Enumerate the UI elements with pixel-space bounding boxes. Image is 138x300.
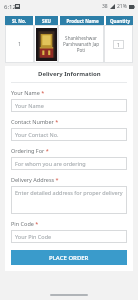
staticText: Your Pin Code [15,233,52,240]
staticText: Your Name [15,102,44,109]
staticText: Ordering For * [11,147,49,154]
staticText: PLACE ORDER [49,254,89,262]
staticText: Sl. No. [12,18,26,24]
staticText: Delivery Address * [11,176,59,183]
staticText: 6:12 [4,3,16,11]
staticText: 1 [117,42,120,48]
staticText: Contact Number * [11,118,59,125]
staticText: 21% [117,3,127,10]
staticText: 1 [18,41,21,48]
staticText: Your Contact No. [15,131,59,138]
button[interactable]: Enter detailed address for proper delive… [11,186,127,214]
staticText: Product Name [66,18,99,24]
staticText: SKU [42,18,51,24]
button[interactable]: Your Pin Code [11,230,127,243]
staticText: Your Name * [11,89,45,96]
staticText: Quantity [110,18,130,24]
button[interactable]: Your Contact No. [11,128,127,141]
staticText: 38 [102,3,108,10]
staticText: Pin Code * [11,220,39,227]
staticText: Delivery Information [38,70,101,78]
staticText: Enter detailed address for proper delive… [15,189,123,196]
button[interactable]: PLACE ORDER [11,250,127,265]
staticText: For whom you are ordering [15,160,86,167]
button[interactable]: For whom you are ordering [11,157,127,170]
button[interactable]: Your Name [11,99,127,112]
staticText: Shankheshwar Parshwanath Jap Poti [60,35,102,53]
